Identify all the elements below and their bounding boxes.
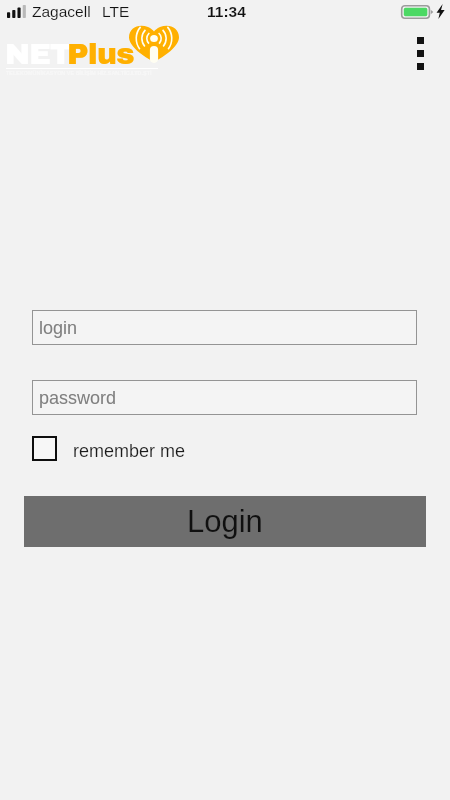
staticText: Login [187, 504, 263, 539]
button[interactable]: Login [24, 496, 426, 547]
staticText: NET [5, 38, 71, 71]
staticText: password [39, 388, 117, 408]
staticText: LTE [102, 3, 130, 20]
staticText: remember me [73, 441, 186, 461]
button[interactable]: login [32, 310, 417, 345]
staticText: Plus [67, 38, 134, 71]
staticText: Zagacell [32, 3, 91, 20]
button[interactable]: remember me [32, 432, 212, 469]
staticText: 11:34 [207, 3, 246, 20]
button[interactable]: More options [396, 26, 444, 80]
button[interactable]: password [32, 380, 417, 415]
staticText: login [39, 318, 78, 338]
